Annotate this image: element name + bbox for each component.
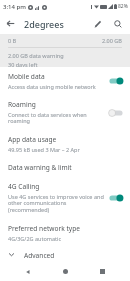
staticText: Connect to data services when roaming	[8, 111, 104, 125]
button[interactable]: Advanced	[0, 247, 130, 262]
button[interactable]: Toggle off	[108, 108, 124, 118]
staticText: 2degrees	[24, 18, 64, 30]
staticText: Roaming	[8, 100, 36, 109]
staticText: 4G Calling	[8, 182, 40, 191]
staticText: 30 days left	[8, 61, 38, 67]
staticText: 49.95 kB used 3 Mar – 2 Apr	[8, 146, 80, 153]
staticText: 3:14 pm	[3, 3, 26, 11]
button[interactable]: Recent apps	[93, 262, 112, 281]
staticText: 4G/3G/2G automatic	[8, 235, 62, 242]
button[interactable]: Search	[108, 14, 128, 34]
staticText: 0 B	[8, 37, 17, 44]
staticText: Preferred network type	[8, 224, 80, 233]
button[interactable]: Data warning & limit	[0, 158, 130, 177]
staticText: App data usage	[8, 135, 57, 144]
button[interactable]: Back	[0, 13, 21, 34]
staticText: 2.00 GB	[102, 37, 122, 44]
button[interactable]: 4G Calling	[0, 177, 130, 219]
staticText: Access data using mobile network	[8, 83, 96, 90]
button[interactable]: Home	[56, 262, 75, 281]
button[interactable]: App data usage	[0, 130, 130, 158]
button[interactable]: Back	[18, 262, 37, 281]
staticText: Data warning & limit	[8, 163, 72, 172]
button[interactable]: Toggle on	[108, 193, 124, 203]
staticText: 2.00 GB data warning	[8, 52, 64, 59]
staticText: Advanced	[24, 251, 55, 258]
staticText: Use 4G services to improve voice and oth…	[8, 193, 104, 214]
button[interactable]: Roaming	[0, 95, 130, 130]
button[interactable]: Edit	[88, 14, 108, 34]
button[interactable]: Mobile data	[0, 67, 130, 95]
button[interactable]: Preferred network type	[0, 219, 130, 247]
button[interactable]: Toggle on	[108, 76, 124, 86]
staticText: Mobile data	[8, 72, 45, 81]
staticText: 82%	[118, 3, 128, 10]
